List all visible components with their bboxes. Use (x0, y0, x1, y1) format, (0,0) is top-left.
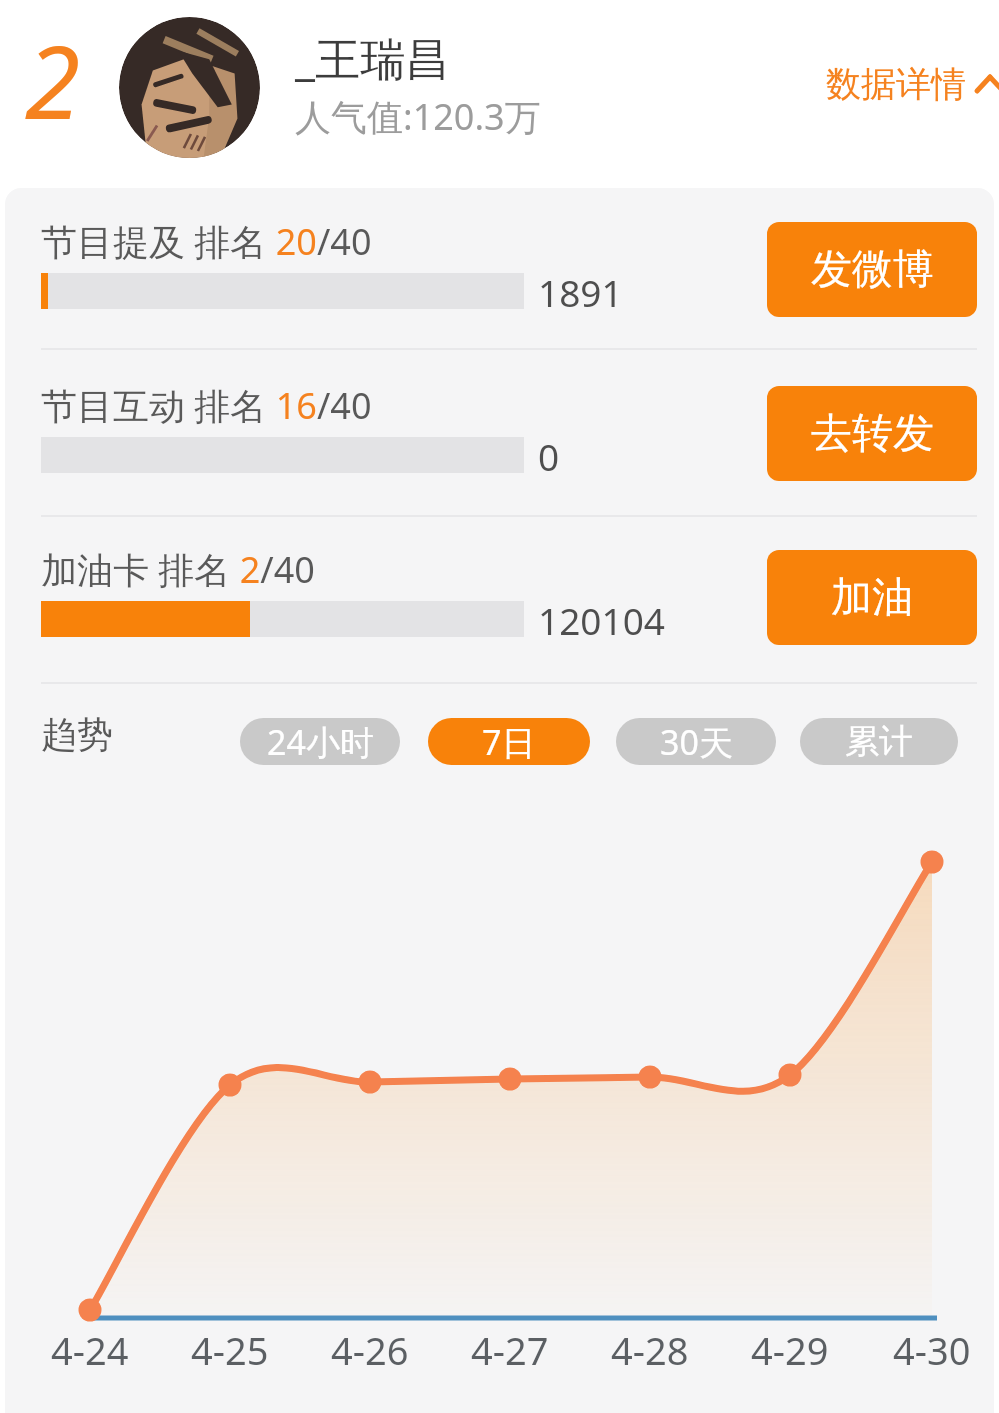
staticText: 节目互动 排名 16/40 (41, 381, 372, 430)
staticText: 120104 (538, 595, 665, 643)
staticText: 4-24 (51, 1324, 129, 1376)
staticText: 发微博 (811, 244, 934, 296)
staticText: 2 (25, 12, 81, 148)
button[interactable]: 加油 (767, 550, 977, 645)
staticText: 加油 (831, 572, 913, 624)
button[interactable]: 7日 (428, 718, 590, 765)
staticText: 7日 (482, 719, 536, 765)
staticText: 4-29 (751, 1324, 829, 1376)
button[interactable] (119, 17, 260, 158)
staticText: 人气值:120.3万 (295, 92, 541, 141)
staticText: 4-28 (611, 1324, 689, 1376)
staticText: 4-25 (191, 1324, 269, 1376)
staticText: 4-27 (471, 1324, 549, 1376)
button[interactable]: 30天 (616, 718, 776, 765)
staticText: 节目提及 排名 20/40 (41, 217, 372, 266)
staticText: 去转发 (811, 408, 934, 460)
staticText: 24小时 (267, 719, 374, 765)
staticText: 4-26 (331, 1324, 409, 1376)
button[interactable]: 去转发 (767, 386, 977, 481)
staticText: 累计 (845, 720, 913, 763)
staticText: _王瑞昌 (295, 27, 450, 88)
staticText: 1891 (538, 267, 623, 315)
button[interactable]: 24小时 (240, 718, 400, 765)
button[interactable]: 累计 (800, 718, 958, 765)
staticText: 加油卡 排名 2/40 (41, 545, 315, 594)
staticText: 30天 (660, 719, 733, 765)
staticText: 4-30 (893, 1324, 971, 1376)
staticText: 数据详情 (826, 62, 966, 106)
staticText: 趋势 (41, 712, 113, 757)
staticText: 0 (538, 431, 560, 479)
button[interactable]: 发微博 (767, 222, 977, 317)
button[interactable]: 数据详情 (826, 62, 999, 106)
